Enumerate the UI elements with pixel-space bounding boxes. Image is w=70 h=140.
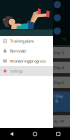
staticText: Day 3	[54, 50, 64, 55]
button[interactable]: Training plans	[0, 36, 53, 46]
staticText: t Day	[54, 93, 63, 99]
button[interactable]: Home	[23, 128, 47, 140]
staticText: 1%	[61, 36, 66, 42]
button[interactable]: Reminder	[0, 46, 53, 56]
button[interactable]: Recent apps	[47, 128, 70, 140]
staticText: Reminder	[10, 48, 27, 54]
button[interactable]: Back	[0, 128, 23, 140]
staticText: Day 4	[54, 65, 64, 70]
staticText: Monitoring/progress	[10, 58, 46, 64]
staticText: Day 5	[54, 80, 64, 85]
staticText: Training plans	[10, 38, 34, 44]
staticText: Settings	[10, 68, 23, 74]
staticText: ay 7/8	[54, 118, 64, 124]
button[interactable]: Monitoring/progress	[0, 56, 53, 66]
button[interactable]: Settings	[0, 66, 53, 76]
